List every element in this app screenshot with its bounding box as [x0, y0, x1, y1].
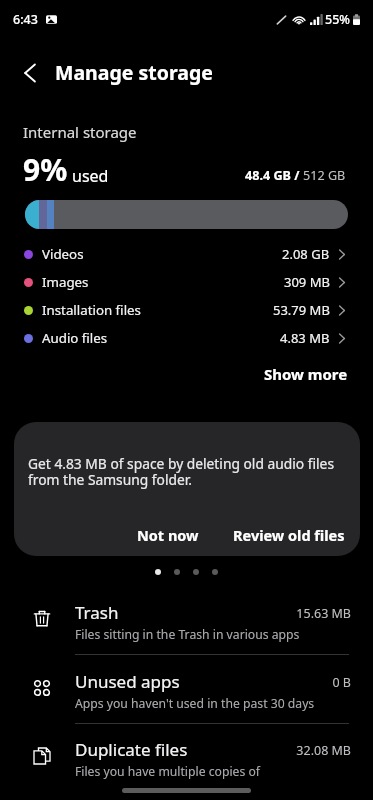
staticText: 53.79 MB — [273, 301, 330, 319]
button[interactable]: Not now — [129, 517, 207, 553]
button[interactable]: Show more — [239, 358, 373, 390]
button[interactable]: Back — [12, 55, 48, 91]
staticText: 2.08 GB — [282, 245, 330, 263]
staticText: 0 B — [0, 674, 351, 691]
staticText: Show more — [264, 364, 348, 384]
staticText: 512 GB — [303, 167, 346, 184]
staticText: / — [291, 167, 303, 184]
staticText: used — [72, 165, 109, 187]
button[interactable]: Get 4.83 MB of space by deleting old aud… — [14, 422, 360, 556]
staticText: Images — [42, 273, 89, 291]
staticText: 9% — [23, 149, 68, 190]
button[interactable]: Trash — [0, 596, 373, 663]
staticText: Get 4.83 MB of space by deleting old aud… — [28, 454, 334, 489]
staticText: Unused apps — [75, 670, 180, 693]
staticText: Files sitting in the Trash in various ap… — [75, 626, 300, 643]
staticText: Audio files — [42, 329, 108, 347]
staticText: 4.83 MB — [280, 329, 330, 347]
staticText: Internal storage — [23, 122, 137, 142]
button[interactable]: Review old files — [225, 517, 360, 553]
button[interactable]: Audio files — [0, 324, 373, 352]
staticText: Manage storage — [55, 59, 213, 86]
button[interactable]: Images — [0, 268, 373, 296]
button[interactable]: Videos — [0, 240, 373, 268]
staticText: 48.4 GB — [245, 167, 291, 184]
staticText: Apps you haven't used in the past 30 day… — [75, 695, 315, 712]
staticText: 309 MB — [284, 273, 330, 291]
staticText: 32.08 MB — [0, 742, 351, 759]
staticText: 15.63 MB — [0, 605, 351, 622]
staticText: Videos — [42, 245, 84, 263]
staticText: Installation files — [42, 301, 141, 319]
button[interactable]: Unused apps — [0, 665, 373, 732]
staticText: 55% — [325, 11, 350, 28]
staticText: Review old files — [233, 525, 345, 545]
staticText: Trash — [75, 601, 119, 624]
staticText: Duplicate files — [75, 738, 188, 761]
staticText: 6:43 — [13, 11, 38, 28]
staticText: Files you have multiple copies of — [75, 763, 260, 780]
staticText: Not now — [137, 525, 199, 545]
button[interactable]: Duplicate files — [0, 733, 373, 793]
button[interactable]: Installation files — [0, 296, 373, 324]
